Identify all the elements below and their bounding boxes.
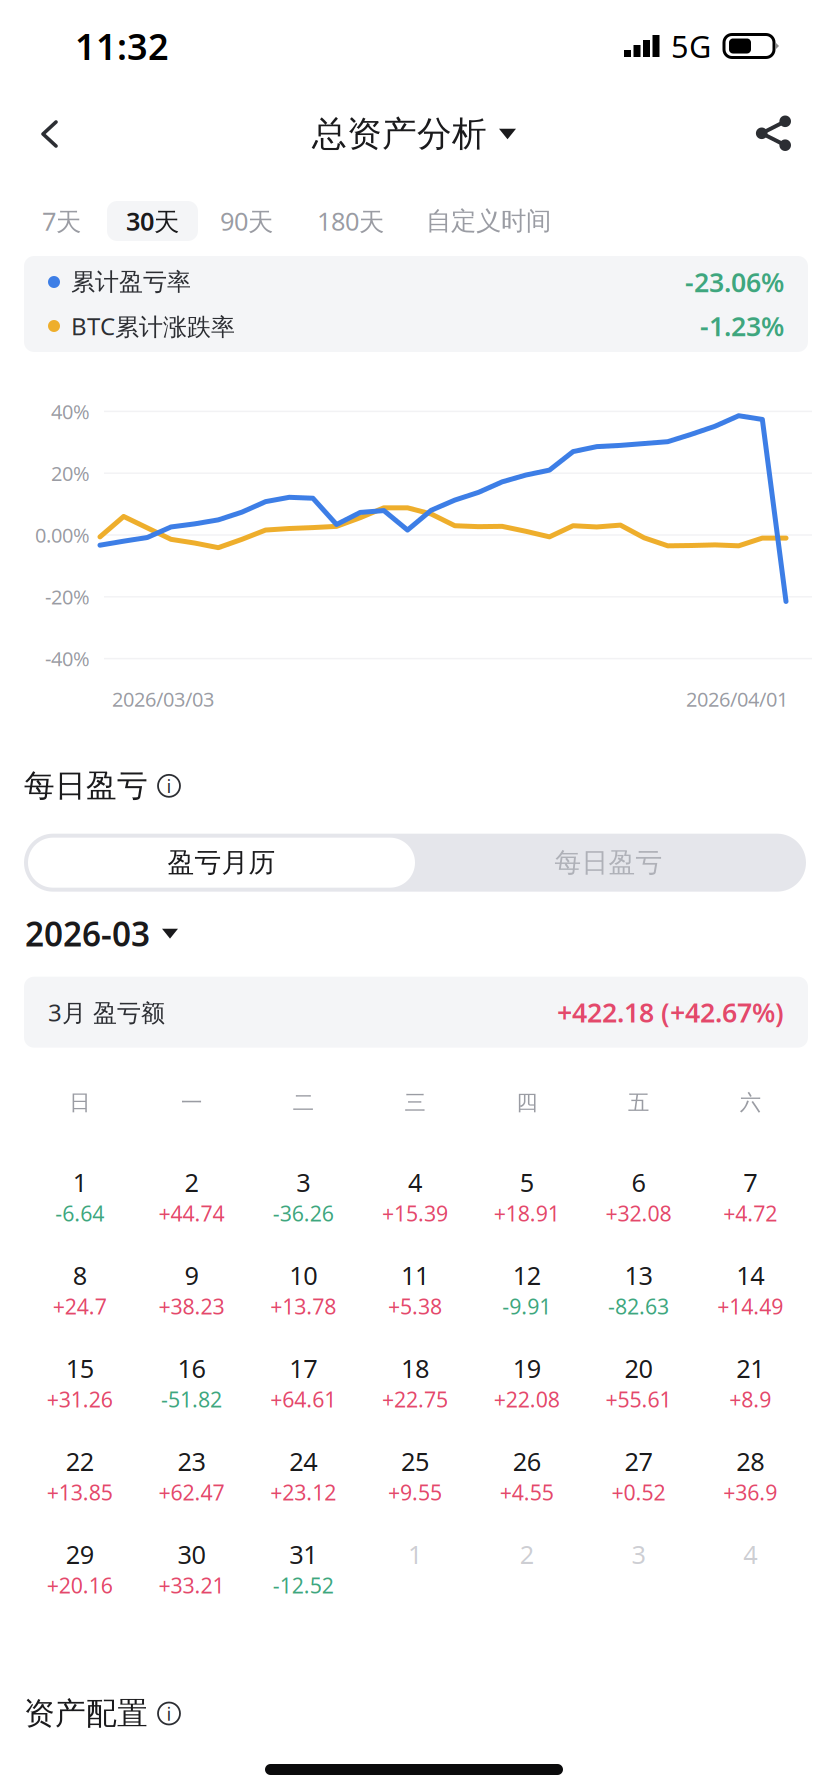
staticText: -23.06%: [685, 264, 784, 300]
staticText: 21: [736, 1351, 764, 1385]
staticText: 40%: [51, 398, 90, 425]
staticText: -20%: [45, 583, 90, 610]
staticText: 5G: [671, 26, 711, 66]
staticText: 5: [520, 1165, 534, 1199]
staticText: +23.12: [270, 1478, 336, 1506]
staticText: 11: [401, 1258, 429, 1292]
button[interactable]: 盈亏月历: [28, 838, 415, 888]
staticText: 23: [178, 1444, 206, 1478]
staticText: -82.63: [608, 1292, 669, 1320]
staticText: -6.64: [55, 1199, 104, 1227]
staticText: 90天: [220, 204, 273, 238]
staticText: 6: [631, 1165, 645, 1199]
staticText: 2026-03: [25, 911, 150, 956]
button[interactable]: 7天: [42, 201, 81, 241]
staticText: BTC累计涨跌率: [71, 310, 235, 342]
staticText: 2: [520, 1537, 534, 1571]
button[interactable]: Share: [742, 102, 806, 166]
staticText: +55.61: [605, 1385, 671, 1413]
staticText: i: [166, 773, 171, 798]
staticText: +18.91: [494, 1199, 560, 1227]
staticText: +33.21: [159, 1571, 225, 1599]
staticText: 2026/04/01: [686, 686, 788, 712]
button[interactable]: 30天: [107, 201, 198, 241]
staticText: +9.55: [388, 1478, 442, 1506]
staticText: +422.18 (+42.67%): [557, 994, 784, 1030]
staticText: 13: [624, 1258, 652, 1292]
staticText: 3: [296, 1165, 310, 1199]
staticText: +0.52: [611, 1478, 665, 1506]
staticText: 10: [289, 1258, 317, 1292]
staticText: 总资产分析: [312, 113, 487, 155]
staticText: 一: [181, 1090, 202, 1116]
staticText: 25: [401, 1444, 429, 1478]
staticText: 四: [516, 1090, 537, 1116]
staticText: 4: [408, 1165, 422, 1199]
staticText: 日: [69, 1090, 90, 1116]
staticText: 每日盈亏: [554, 846, 662, 879]
staticText: 12: [513, 1258, 541, 1292]
staticText: +44.74: [159, 1199, 225, 1227]
staticText: 16: [178, 1351, 206, 1385]
staticText: 28: [736, 1444, 764, 1478]
button[interactable]: 180天: [317, 201, 384, 241]
button[interactable]: 总资产分析: [312, 104, 516, 164]
staticText: -36.26: [273, 1199, 334, 1227]
staticText: 3月 盈亏额: [48, 996, 165, 1028]
staticText: +38.23: [159, 1292, 225, 1320]
button[interactable]: 2026-03: [25, 912, 178, 956]
staticText: 累计盈亏率: [71, 267, 191, 297]
staticText: -9.91: [502, 1292, 551, 1320]
staticText: 19: [513, 1351, 541, 1385]
staticText: +64.61: [270, 1385, 336, 1413]
button[interactable]: 90天: [220, 201, 273, 241]
staticText: +20.16: [47, 1571, 113, 1599]
staticText: 五: [628, 1090, 649, 1116]
staticText: 每日盈亏: [24, 767, 148, 805]
staticText: +22.75: [382, 1385, 448, 1413]
staticText: 18: [401, 1351, 429, 1385]
staticText: 11:32: [75, 22, 169, 70]
staticText: +15.39: [382, 1199, 448, 1227]
staticText: +32.08: [605, 1199, 671, 1227]
staticText: -51.82: [161, 1385, 222, 1413]
staticText: 1: [408, 1537, 422, 1571]
staticText: 30: [178, 1537, 206, 1571]
staticText: 31: [289, 1537, 317, 1571]
button[interactable]: Back: [16, 102, 80, 166]
staticText: 8: [73, 1258, 87, 1292]
staticText: +5.38: [388, 1292, 442, 1320]
staticText: 3: [631, 1537, 645, 1571]
staticText: +14.49: [717, 1292, 783, 1320]
staticText: 资产配置: [24, 1695, 148, 1732]
staticText: 9: [185, 1258, 199, 1292]
staticText: 24: [289, 1444, 317, 1478]
staticText: 六: [740, 1090, 761, 1116]
button[interactable]: 每日盈亏: [415, 838, 802, 888]
staticText: +8.9: [729, 1385, 771, 1413]
staticText: 1: [73, 1165, 87, 1199]
staticText: +13.85: [47, 1478, 113, 1506]
staticText: +4.72: [723, 1199, 777, 1227]
staticText: i: [166, 1701, 171, 1726]
staticText: 180天: [317, 204, 384, 238]
staticText: 27: [624, 1444, 652, 1478]
staticText: +4.55: [500, 1478, 554, 1506]
staticText: 20%: [51, 460, 90, 486]
staticText: 7天: [42, 204, 81, 238]
staticText: 2: [185, 1165, 199, 1199]
staticText: +24.7: [53, 1292, 107, 1320]
staticText: 29: [66, 1537, 94, 1571]
staticText: 0.00%: [35, 522, 90, 548]
staticText: +22.08: [494, 1385, 560, 1413]
button[interactable]: 自定义时间: [426, 201, 551, 241]
staticText: 二: [293, 1090, 314, 1116]
staticText: 三: [404, 1090, 425, 1116]
staticText: 22: [66, 1444, 94, 1478]
staticText: 30天: [126, 204, 179, 238]
staticText: +36.9: [723, 1478, 777, 1506]
